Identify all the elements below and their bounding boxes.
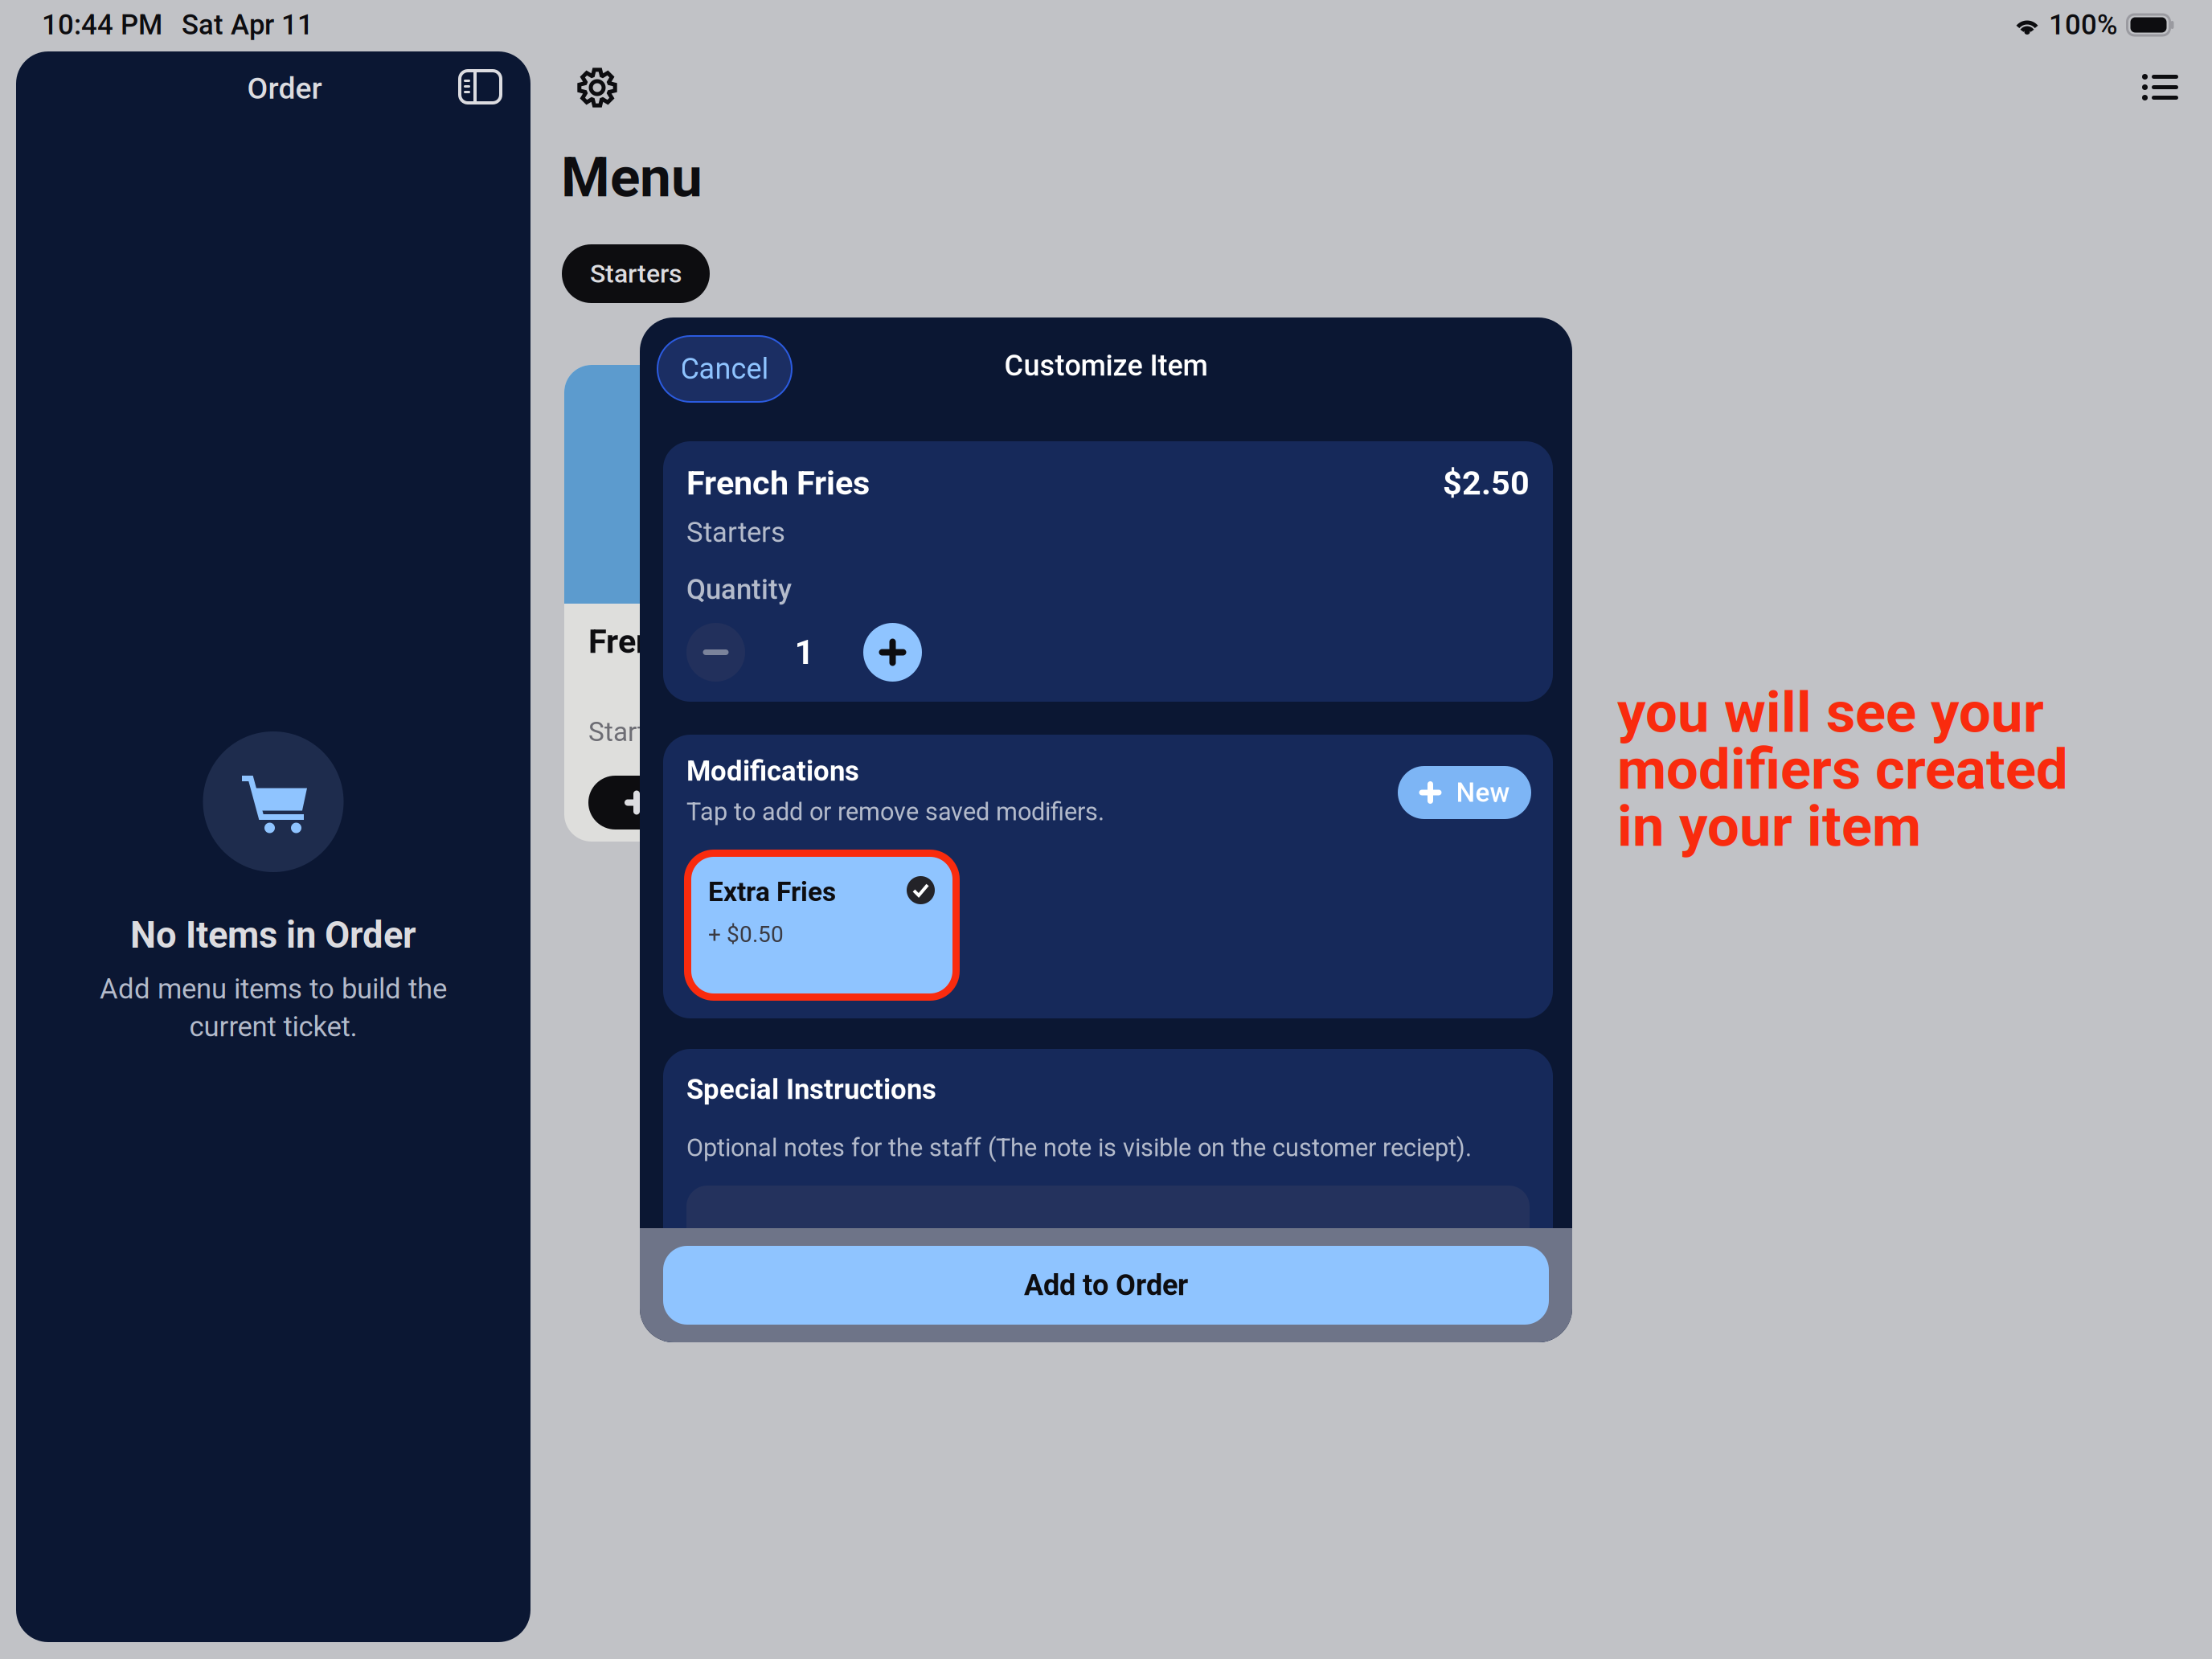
staticText: 100% [2049,9,2118,41]
staticText: Special Instructions [686,1073,936,1106]
staticText: French Fries [588,622,772,661]
staticText: No Items in Order [130,914,416,957]
staticText: you will see your [1617,679,2044,746]
button[interactable]: Add to Order [663,1246,1549,1325]
staticText: Add menu items to build the [100,973,447,1005]
staticText: Menu [561,145,703,210]
button[interactable]: Extra Fries [684,850,960,1001]
staticText: Customize Item [1004,349,1208,383]
staticText: 10:44 PM [42,9,162,41]
staticText: Starters [588,716,683,748]
staticText: Starters [686,516,785,549]
button[interactable]: Increase quantity [863,623,922,682]
staticText: Modifications [686,755,859,787]
staticText: Quantity [686,573,792,606]
staticText: Starters [590,259,682,289]
staticText: Order [247,71,322,106]
button[interactable]: Starters [562,244,710,303]
staticText: current ticket. [189,1010,357,1043]
button[interactable]: Special instructions text field [686,1186,1530,1346]
staticText: Sat Apr 11 [182,9,313,41]
button[interactable]: Toggle Sidebar [447,58,514,116]
button[interactable]: Settings [563,54,631,121]
staticText: French Fries [686,464,870,503]
staticText: Add to Order [1024,1268,1188,1302]
staticText: Extra Fries [708,876,836,908]
button[interactable]: Decrease quantity [686,623,745,682]
staticText: 1 [795,632,814,672]
button[interactable]: Open Orders [2128,59,2193,115]
button[interactable]: Cancel [657,336,792,402]
staticText: + $0.50 [708,921,784,947]
staticText: Cancel [680,352,769,386]
button[interactable]: New [1398,766,1531,819]
button[interactable]: Add French Fries [588,776,685,829]
staticText: Tap to add or remove saved modifiers. [686,797,1104,826]
staticText: Optional notes for the staff (The note i… [686,1133,1472,1162]
staticText: $2.50 [1443,464,1530,503]
staticText: modifiers created [1617,736,2068,803]
staticText: New [1456,777,1510,808]
staticText: in your item [1617,793,1921,860]
